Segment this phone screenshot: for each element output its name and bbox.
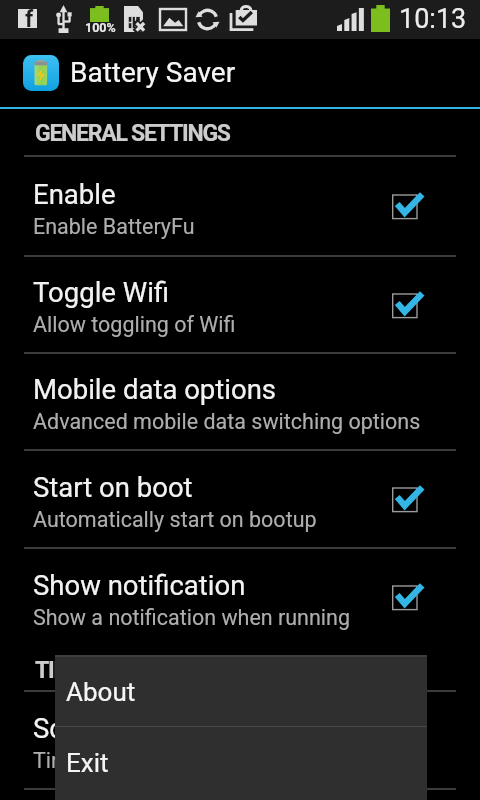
staticText: GENERAL SETTINGS (35, 120, 230, 147)
button[interactable]: Mobile data options (0, 354, 480, 451)
button[interactable]: Enable (0, 157, 480, 257)
staticText: Enable BatteryFu (33, 214, 195, 239)
staticText: Mobile data options (33, 373, 277, 405)
button[interactable]: Show notification (0, 549, 480, 647)
button[interactable]: Enabled checkbox (392, 482, 426, 516)
button[interactable]: Enabled checkbox (392, 288, 426, 322)
staticText: Time based scheduling options (33, 748, 332, 773)
staticText: Enable (33, 178, 116, 210)
staticText: Show a notification when running (33, 605, 351, 630)
button[interactable]: Battery Saver (0, 39, 480, 107)
staticText: Advanced mobile data switching options (33, 409, 421, 434)
button[interactable]: Enabled checkbox (392, 189, 426, 223)
staticText: 10:13 (399, 3, 467, 35)
staticText: Automatically start on bootup (33, 507, 317, 532)
staticText: f (25, 6, 34, 33)
staticText: About (66, 677, 136, 707)
staticText: Schedule (33, 712, 146, 744)
staticText: Battery Saver (70, 56, 236, 89)
staticText: Start on boot (33, 471, 193, 503)
button[interactable]: Exit (55, 727, 427, 800)
button[interactable]: Enabled checkbox (392, 580, 426, 614)
staticText: 100% (85, 20, 116, 35)
staticText: Allow toggling of Wifi (33, 312, 236, 337)
button[interactable]: About (55, 655, 427, 726)
button[interactable]: Toggle Wifi (0, 257, 480, 354)
button[interactable]: Schedule (0, 692, 480, 790)
staticText: Toggle Wifi (33, 276, 170, 308)
button[interactable]: Start on boot (0, 451, 480, 549)
staticText: TIMER SETTINGS (35, 657, 201, 684)
staticText: Exit (66, 748, 109, 778)
staticText: Show notification (33, 569, 246, 601)
